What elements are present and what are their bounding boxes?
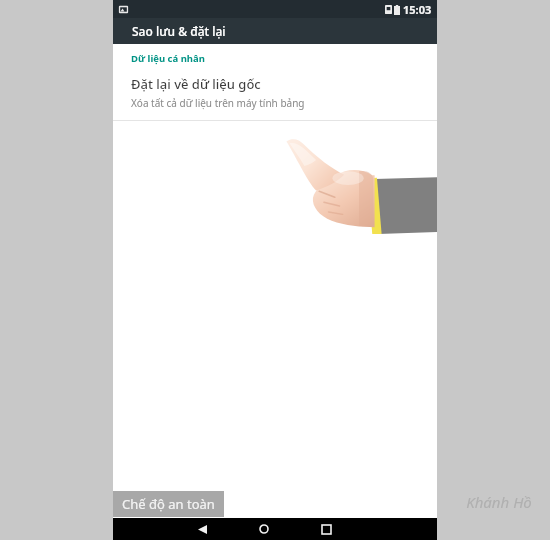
staticText: Khánh Hồ: [458, 492, 540, 512]
staticText: Đặt lại về dữ liệu gốc: [131, 75, 261, 93]
button[interactable]: Chế độ an toàn: [113, 491, 224, 517]
staticText: Dữ liệu cá nhân: [131, 52, 205, 65]
staticText: 15:03: [403, 2, 432, 17]
button[interactable]: Recent apps: [307, 518, 345, 540]
button[interactable]: Đặt lại về dữ liệu gốc: [113, 74, 437, 118]
button[interactable]: Back: [183, 518, 221, 540]
staticText: Chế độ an toàn: [122, 495, 215, 513]
button[interactable]: Home: [245, 518, 283, 540]
staticText: Xóa tất cả dữ liệu trên máy tính bảng: [131, 96, 305, 110]
staticText: Sao lưu & đặt lại: [132, 23, 226, 39]
